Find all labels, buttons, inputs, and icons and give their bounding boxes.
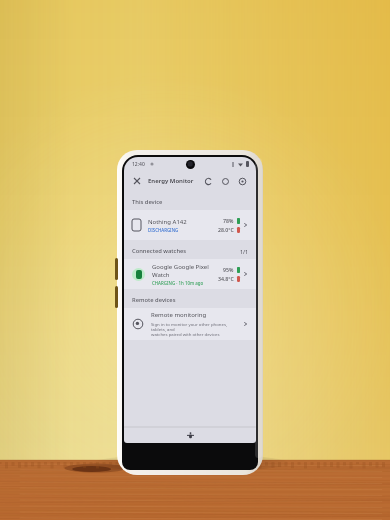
button[interactable]: Accessibility menu [185, 430, 195, 440]
staticText: 78% [223, 217, 234, 224]
staticText: This device [132, 198, 163, 206]
staticText: 95% [223, 266, 234, 273]
button[interactable]: Notifications [219, 175, 232, 188]
staticText: Remote devices [132, 296, 176, 304]
button[interactable]: Close [131, 175, 143, 187]
staticText: Google Google Pixel Watch [152, 263, 218, 279]
staticText: Energy Monitor [148, 177, 194, 185]
other: Volume button [115, 258, 118, 280]
staticText: 28.0°C [218, 226, 234, 233]
staticText: 1/1 [240, 248, 248, 255]
staticText: DISCHARGING [148, 227, 179, 233]
staticText: Sign in to monitor your other phones, ta… [151, 321, 240, 337]
button[interactable]: Google Google Pixel Watch [124, 259, 256, 289]
staticText: 34.8°C [218, 275, 234, 282]
staticText: CHARGING · 1h 10m ago [152, 280, 204, 286]
staticText: 12:40 [132, 161, 145, 168]
button[interactable]: Settings [236, 175, 249, 188]
other: Power button [115, 286, 118, 308]
button[interactable]: Nothing A142 [124, 210, 256, 240]
button[interactable]: Remote monitoring [124, 308, 256, 340]
staticText: Nothing A142 [148, 218, 187, 226]
staticText: Connected watches [132, 247, 187, 255]
staticText: Remote monitoring [151, 311, 207, 319]
button[interactable]: Refresh [202, 175, 215, 188]
